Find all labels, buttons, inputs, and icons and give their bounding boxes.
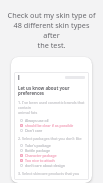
button[interactable]: Bottle package [20, 148, 85, 153]
staticText: don't care about design [25, 163, 65, 168]
staticText: Character package [25, 153, 57, 158]
staticText: Check out my skin type of 48 different s… [5, 10, 98, 50]
button[interactable]: Tube's package [20, 143, 85, 148]
button[interactable]: Always use oil [20, 118, 85, 123]
button[interactable]: should be clear if as possible [20, 123, 85, 128]
staticText: 1. I've been used cosmetic brands that c… [18, 100, 85, 115]
staticText: Don't care [25, 128, 43, 133]
staticText: should be clear if as possible [25, 123, 74, 128]
staticText: Too nice to attach [25, 158, 55, 163]
button[interactable]: Don't care [20, 128, 85, 133]
staticText: 2. Select packages that you don't like [18, 136, 82, 141]
staticText: Let us know about your preferences [18, 85, 85, 97]
staticText: Bottle package [25, 148, 51, 153]
button[interactable]: Character package [20, 153, 85, 158]
button[interactable]: don't care about design [20, 163, 85, 168]
staticText: Always use oil [25, 118, 49, 123]
other: Logo [18, 75, 21, 80]
staticText: 3. Select skincare products that you don… [18, 171, 85, 177]
button[interactable]: Logo [11, 57, 92, 183]
staticText: Tube's package [25, 143, 51, 148]
button[interactable]: Too nice to attach [20, 158, 85, 163]
